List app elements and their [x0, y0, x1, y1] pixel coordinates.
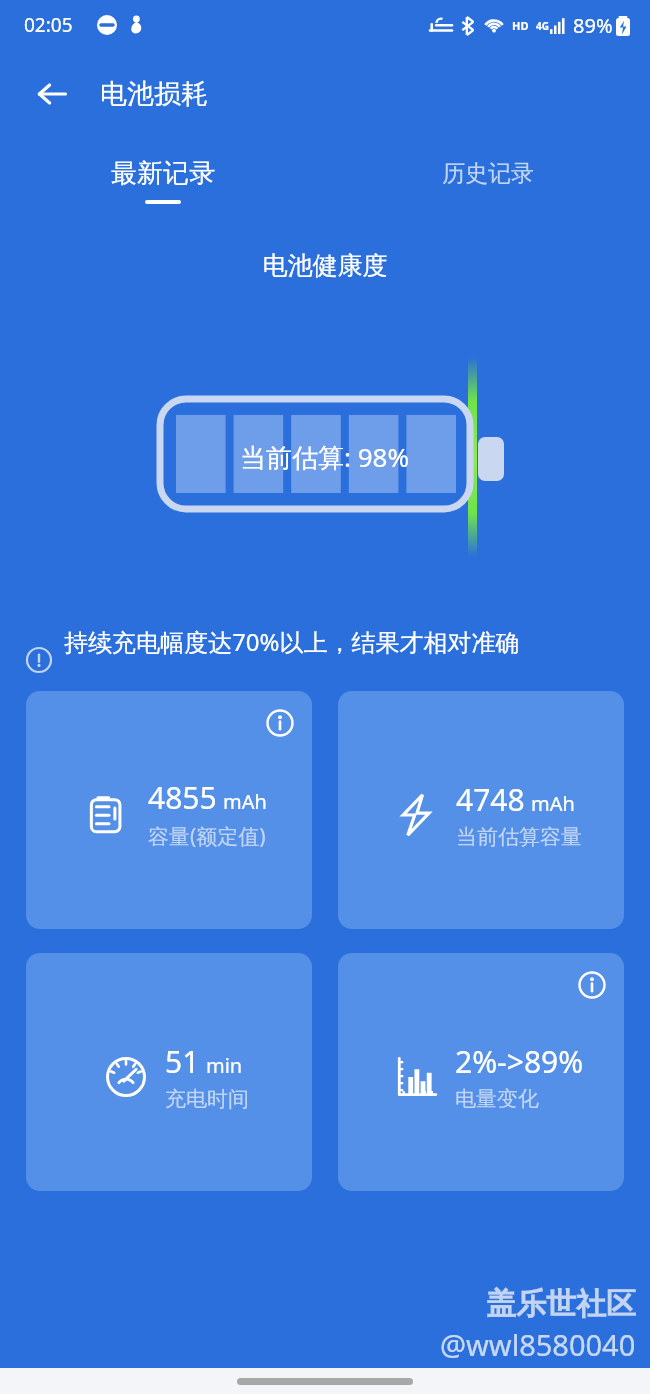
staticText: 电量变化 [455, 1086, 539, 1112]
staticText: 电池损耗 [100, 77, 208, 111]
staticText: 4G [536, 19, 549, 33]
staticText: min [206, 1052, 243, 1079]
staticText: 电池健康度 [0, 250, 650, 281]
staticText: 历史记录 [442, 159, 534, 188]
button[interactable]: 51 [26, 953, 312, 1191]
staticText: HD [512, 18, 529, 33]
staticText: 当前估算容量 [456, 824, 582, 850]
button[interactable]: Info [572, 965, 612, 1005]
staticText: 4855 [148, 777, 217, 818]
button[interactable]: Info [338, 953, 624, 1191]
button[interactable]: Info [260, 703, 300, 743]
button[interactable]: 历史记录 [325, 138, 650, 222]
staticText: 02:05 [24, 12, 73, 38]
staticText: 容量(额定值) [148, 822, 266, 851]
staticText: 4748 [456, 779, 525, 820]
staticText: @wwl8580040 [440, 1325, 636, 1364]
staticText: 51 [165, 1041, 200, 1082]
staticText: 当前估算: 98% [240, 439, 410, 475]
staticText: mAh [531, 790, 575, 817]
staticText: 充电时间 [165, 1086, 249, 1112]
button[interactable]: Back [26, 68, 78, 120]
staticText: mAh [223, 788, 267, 815]
staticText: 最新记录 [111, 157, 215, 190]
button[interactable]: 最新记录 [0, 138, 325, 222]
staticText: 持续充电幅度达70%以上，结果才相对准确 [64, 625, 520, 658]
staticText: 89% [573, 12, 613, 39]
staticText: 盖乐世社区 [486, 1285, 636, 1323]
button[interactable]: 4748 [338, 691, 624, 929]
staticText: 2%->89% [455, 1041, 584, 1082]
button[interactable]: Info [26, 691, 312, 929]
